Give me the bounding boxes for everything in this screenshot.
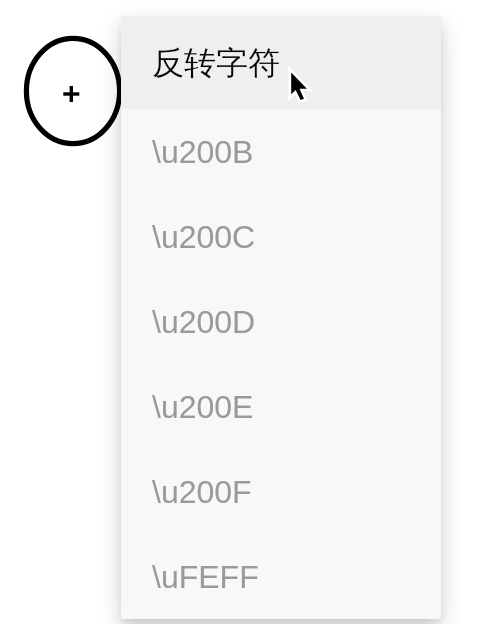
staticText: \u200C [152,219,256,255]
button[interactable]: Add [24,36,122,146]
button[interactable]: \u200B [121,109,441,194]
staticText: \u200D [152,304,256,340]
staticText: \uFEFF [152,559,259,595]
staticText: \u200F [152,474,252,510]
staticText: \u200B [152,134,254,170]
button[interactable]: 反转字符 [121,16,441,109]
button[interactable]: \u200C [121,194,441,279]
button[interactable]: \u200D [121,279,441,364]
staticText: 反转字符 [152,43,280,83]
button[interactable]: \u200F [121,449,441,534]
button[interactable]: \uFEFF [121,534,441,619]
staticText: \u200E [152,389,254,425]
button[interactable]: \u200E [121,364,441,449]
